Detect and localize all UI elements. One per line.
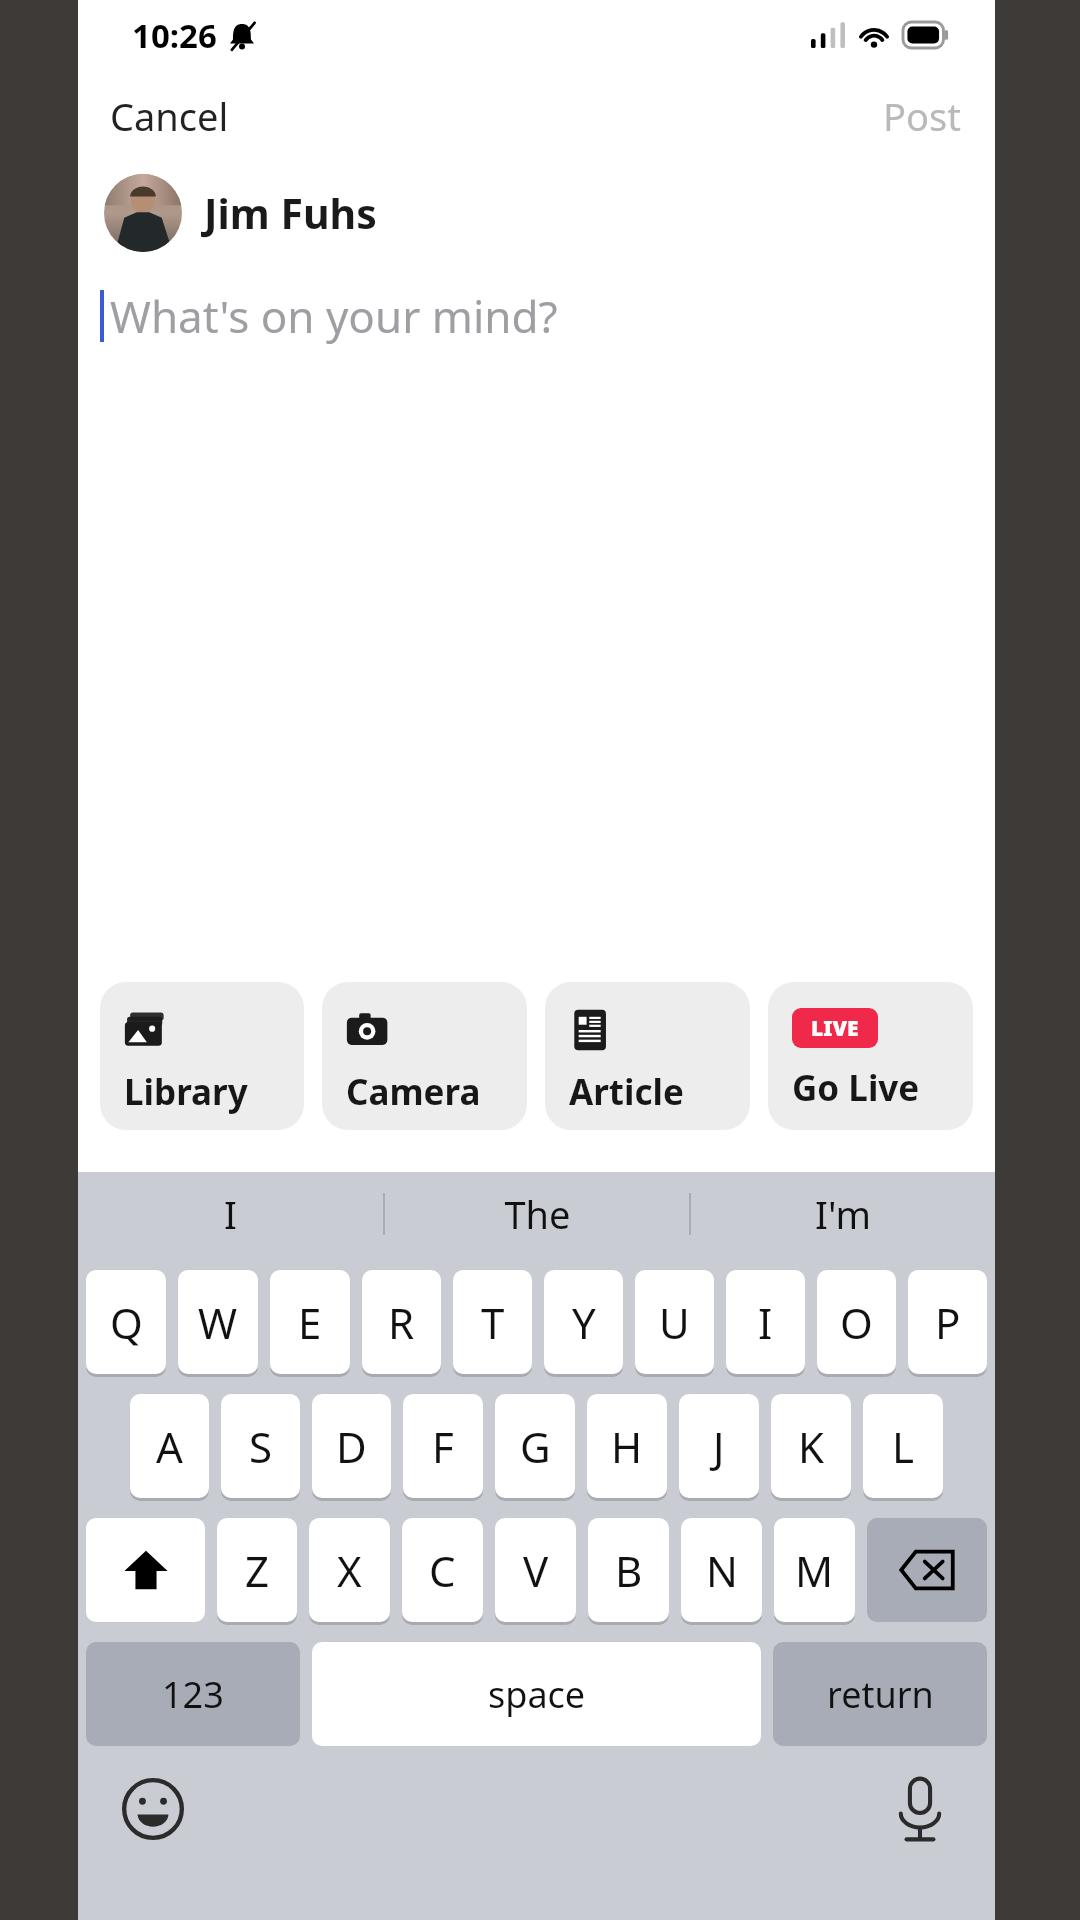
staticText: D [336,1418,367,1475]
staticText: W [198,1294,238,1351]
staticText: J [713,1418,725,1475]
staticText: N [706,1542,738,1599]
button[interactable]: Dictation [881,1770,959,1848]
button[interactable]: Cancel [94,80,245,152]
button[interactable]: S [221,1394,300,1498]
staticText: U [659,1294,690,1351]
button[interactable]: L [863,1394,943,1498]
staticText: K [798,1418,824,1475]
staticText: Z [245,1542,270,1599]
staticText: Article [569,1068,684,1116]
button[interactable]: E [270,1270,350,1374]
staticText: L [892,1418,915,1475]
staticText: return [827,1670,934,1719]
staticText: Jim Fuhs [204,185,377,241]
button[interactable]: What's on your mind? [100,286,995,346]
button[interactable]: T [453,1270,532,1374]
button[interactable]: J [679,1394,759,1498]
staticText: T [481,1294,505,1351]
staticText: A [156,1418,183,1475]
button[interactable]: Q [86,1270,166,1374]
button[interactable]: D [312,1394,391,1498]
button[interactable]: Article [545,982,750,1130]
button[interactable]: K [771,1394,851,1498]
button[interactable]: The [385,1172,689,1256]
staticText: S [249,1418,273,1475]
staticText: F [432,1418,454,1475]
button[interactable]: Jim Fuhs [104,174,995,252]
button[interactable]: Emoji [114,1770,192,1848]
button[interactable]: Camera [322,982,527,1130]
staticText: C [429,1542,456,1599]
button[interactable]: Post [867,80,977,152]
button[interactable]: 123 [86,1642,300,1746]
button[interactable]: N [681,1518,762,1622]
staticText: space [488,1670,586,1719]
staticText: I'm [815,1188,871,1240]
button[interactable]: O [817,1270,896,1374]
staticText: What's on your mind? [110,286,558,346]
staticText: Y [572,1294,596,1351]
staticText: R [388,1294,415,1351]
button[interactable]: I'm [691,1172,995,1256]
button[interactable]: A [130,1394,209,1498]
button[interactable]: Y [544,1270,623,1374]
button[interactable]: B [588,1518,669,1622]
staticText: M [795,1542,834,1599]
button[interactable]: R [362,1270,441,1374]
staticText: 10:26 [132,13,217,58]
staticText: O [840,1294,873,1351]
button[interactable]: U [635,1270,714,1374]
button[interactable]: space [312,1642,761,1746]
staticText: The [504,1188,571,1240]
staticText: Camera [346,1068,481,1116]
button[interactable]: F [403,1394,483,1498]
button[interactable]: V [495,1518,576,1622]
staticText: 123 [162,1670,224,1719]
button[interactable]: G [495,1394,575,1498]
staticText: X [337,1542,362,1599]
button[interactable]: Shift [86,1518,205,1622]
staticText: Go Live [792,1064,920,1112]
staticText: H [611,1418,643,1475]
staticText: V [523,1542,549,1599]
staticText: Library [124,1068,248,1116]
button[interactable]: Z [217,1518,297,1622]
button[interactable]: C [402,1518,483,1622]
button[interactable]: X [309,1518,390,1622]
button[interactable]: M [774,1518,855,1622]
staticText: Post [883,90,961,142]
button[interactable]: H [587,1394,667,1498]
button[interactable]: Backspace [867,1518,987,1622]
button[interactable]: W [178,1270,258,1374]
staticText: Cancel [110,90,229,142]
staticText: G [520,1418,551,1475]
staticText: Q [110,1294,143,1351]
staticText: LIVE [811,1014,859,1043]
staticText: B [615,1542,643,1599]
staticText: I [224,1188,237,1240]
staticText: E [298,1294,322,1351]
button[interactable]: return [773,1642,987,1746]
button[interactable]: Library [100,982,304,1130]
staticText: I [758,1294,773,1351]
button[interactable]: I [726,1270,805,1374]
button[interactable]: I [78,1172,383,1256]
staticText: P [935,1294,961,1351]
button[interactable]: LIVE [768,982,973,1130]
button[interactable]: P [908,1270,987,1374]
